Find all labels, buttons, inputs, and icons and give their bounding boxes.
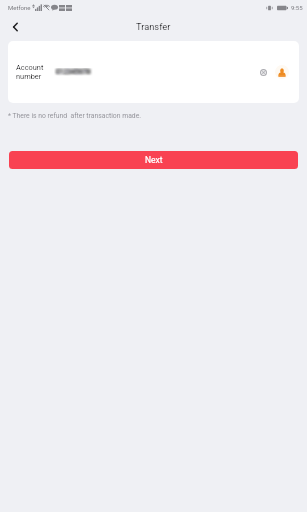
- staticText: Transfer: [136, 21, 171, 32]
- staticText: 012345678: [57, 68, 92, 76]
- staticText: 012345678: [56, 68, 91, 76]
- button[interactable]: Clear: [256, 65, 270, 79]
- button[interactable]: Next: [9, 151, 298, 169]
- staticText: Next: [145, 155, 163, 165]
- staticText: Account number: [16, 63, 44, 81]
- staticText: 012345678: [55, 68, 90, 76]
- staticText: Metfone: [8, 4, 31, 11]
- staticText: 9:55: [291, 4, 303, 11]
- button[interactable]: Account number: [8, 41, 299, 103]
- staticText: 012345678: [55, 68, 90, 76]
- staticText: * There is no refund after transaction m…: [8, 112, 142, 120]
- staticText: 012345678: [56, 68, 91, 76]
- staticText: 012345678: [57, 68, 92, 76]
- staticText: 012345678: [58, 68, 93, 76]
- staticText: 012345678: [54, 68, 89, 76]
- staticText: 012345678: [56, 68, 91, 76]
- button[interactable]: Back: [2, 14, 28, 40]
- button[interactable]: Choose contact: [275, 65, 289, 79]
